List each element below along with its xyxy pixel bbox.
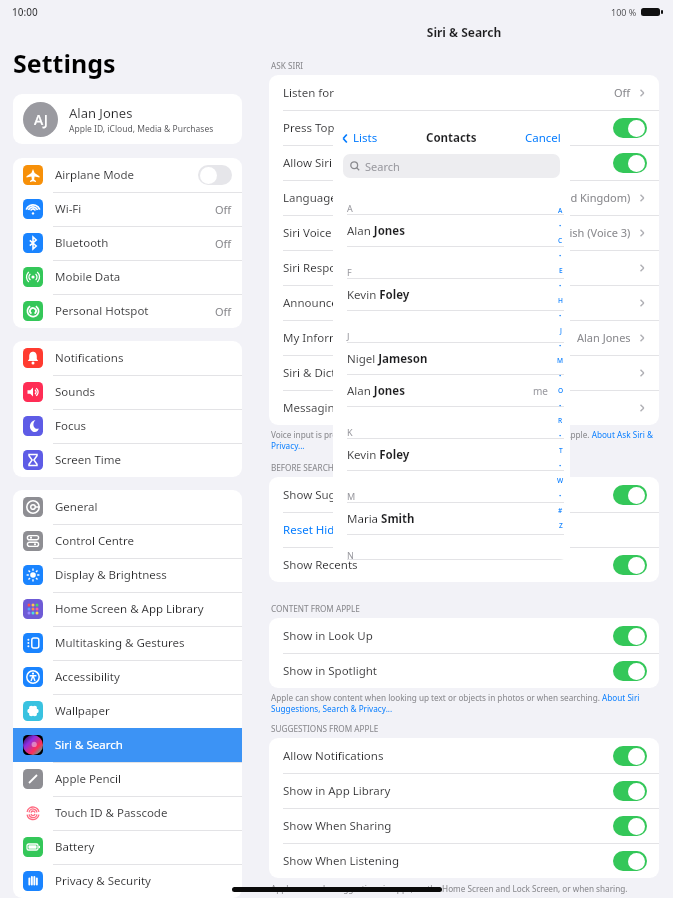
- button[interactable]: Show in App Library: [269, 773, 659, 808]
- staticText: Alan Jones: [347, 223, 405, 239]
- button[interactable]: Alan Jones: [333, 215, 570, 247]
- button[interactable]: Alan Jones: [333, 375, 570, 407]
- staticText: General: [55, 499, 98, 515]
- button[interactable]: On: [613, 153, 647, 173]
- button[interactable]: Touch ID & Passcode: [13, 796, 242, 830]
- button[interactable]: Messaging with Siri: [269, 390, 659, 425]
- staticText: BEFORE SEARCHING: [271, 462, 349, 473]
- button[interactable]: Focus: [13, 409, 242, 443]
- button[interactable]: Allow Siri When Locked: [269, 145, 659, 180]
- staticText: Off: [215, 202, 232, 217]
- button[interactable]: On: [613, 851, 647, 871]
- staticText: Apple ID, iCloud, Media & Purchases: [69, 123, 214, 135]
- button[interactable]: Control Centre: [13, 524, 242, 558]
- button[interactable]: Apple Pencil: [13, 762, 242, 796]
- button[interactable]: Siri & Dictation History: [269, 355, 659, 390]
- button[interactable]: Personal Hotspot: [13, 294, 242, 328]
- button[interactable]: Notifications: [13, 341, 242, 375]
- staticText: AJ: [34, 110, 48, 129]
- staticText: Reset Hidden Suggestions: [283, 522, 425, 538]
- button[interactable]: Allow Notifications: [269, 738, 659, 773]
- button[interactable]: Show Recents: [269, 547, 659, 582]
- button[interactable]: Siri Responses: [269, 250, 659, 285]
- button[interactable]: Accessibility: [13, 660, 242, 694]
- button[interactable]: Kevin Foley: [333, 439, 570, 471]
- button[interactable]: Search: [343, 154, 560, 178]
- staticText: Nigel Jameson: [347, 351, 428, 367]
- button[interactable]: Show When Sharing: [269, 808, 659, 843]
- staticText: Listen for: [283, 85, 334, 101]
- staticText: #: [558, 506, 563, 515]
- button[interactable]: Listen for: [269, 75, 659, 110]
- staticText: A: [558, 206, 563, 215]
- button[interactable]: Screen Time: [13, 443, 242, 477]
- button[interactable]: Siri & Search: [13, 728, 242, 762]
- button[interactable]: Show When Listening: [269, 843, 659, 878]
- staticText: Personal Hotspot: [55, 303, 149, 319]
- button[interactable]: My Information: [269, 320, 659, 355]
- staticText: Siri Responses: [283, 260, 361, 276]
- staticText: H: [558, 296, 563, 305]
- staticText: M: [557, 356, 564, 365]
- button[interactable]: Battery: [13, 830, 242, 864]
- staticText: C: [558, 236, 563, 245]
- button[interactable]: Press Top Button for Siri: [269, 110, 659, 145]
- staticText: Show When Sharing: [283, 818, 392, 834]
- staticText: Alan Jones: [577, 330, 631, 345]
- staticText: Show Recents: [283, 557, 358, 573]
- button[interactable]: Kevin Foley: [333, 279, 570, 311]
- staticText: M: [347, 490, 356, 502]
- button[interactable]: On: [613, 118, 647, 138]
- staticText: Show in Look Up: [283, 628, 373, 644]
- button[interactable]: AJ: [13, 94, 242, 144]
- button[interactable]: Show in Look Up: [269, 618, 659, 653]
- staticText: •: [559, 342, 562, 350]
- staticText: E: [559, 266, 563, 275]
- button[interactable]: Off: [198, 165, 232, 185]
- staticText: R: [558, 416, 563, 425]
- button[interactable]: Maria Smith: [333, 503, 570, 535]
- staticText: Allow Siri When Locked: [283, 155, 408, 171]
- button[interactable]: On: [613, 661, 647, 681]
- staticText: Siri & Dictation History: [283, 365, 405, 381]
- button[interactable]: On: [613, 626, 647, 646]
- button[interactable]: Announce Calls: [269, 285, 659, 320]
- staticText: Show in App Library: [283, 783, 391, 799]
- button[interactable]: Show Suggestions: [269, 477, 659, 512]
- staticText: Siri & Search: [255, 24, 673, 40]
- button[interactable]: On: [613, 485, 647, 505]
- button[interactable]: Show in Spotlight: [269, 653, 659, 688]
- button[interactable]: General: [13, 490, 242, 524]
- staticText: K: [347, 426, 353, 438]
- staticText: Voice input is processed on iPad, but tr…: [271, 429, 657, 451]
- button[interactable]: Wallpaper: [13, 694, 242, 728]
- staticText: A: [347, 202, 353, 214]
- button[interactable]: On: [613, 746, 647, 766]
- staticText: Messaging with Siri: [283, 400, 388, 416]
- staticText: •: [559, 282, 562, 290]
- staticText: me: [533, 384, 548, 398]
- button[interactable]: Reset Hidden Suggestions: [269, 512, 659, 547]
- button[interactable]: Airplane Mode: [13, 158, 242, 192]
- button[interactable]: Language: [269, 180, 659, 215]
- button[interactable]: Privacy & Security: [13, 864, 242, 898]
- staticText: Maria Smith: [347, 511, 415, 527]
- button[interactable]: Lists: [340, 130, 378, 146]
- button[interactable]: Bluetooth: [13, 226, 242, 260]
- button[interactable]: On: [613, 555, 647, 575]
- staticText: •: [559, 492, 562, 500]
- button[interactable]: Cancel: [525, 130, 561, 146]
- button[interactable]: On: [613, 816, 647, 836]
- button[interactable]: Mobile Data: [13, 260, 242, 294]
- button[interactable]: Home Screen & App Library: [13, 592, 242, 626]
- staticText: Language: [283, 190, 337, 206]
- button[interactable]: Nigel Jameson: [333, 343, 570, 375]
- button[interactable]: Sounds: [13, 375, 242, 409]
- staticText: Screen Time: [55, 452, 122, 468]
- button[interactable]: Siri Voice: [269, 215, 659, 250]
- button[interactable]: On: [613, 781, 647, 801]
- button[interactable]: Display & Brightness: [13, 558, 242, 592]
- button[interactable]: Wi-Fi: [13, 192, 242, 226]
- button[interactable]: Multitasking & Gestures: [13, 626, 242, 660]
- staticText: Show When Listening: [283, 853, 399, 869]
